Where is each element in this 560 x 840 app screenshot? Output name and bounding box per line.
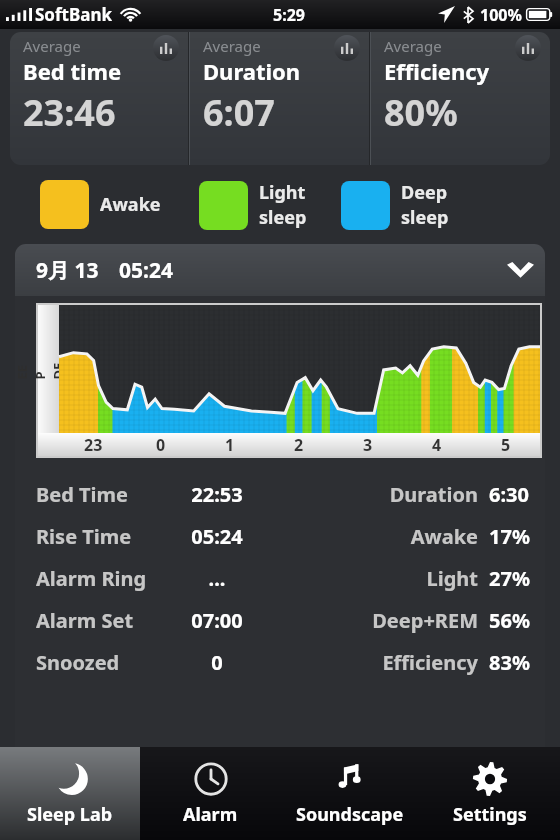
staticText: Rise Time [36,523,168,550]
staticText: Alarm Set [36,607,168,634]
staticText: 5 [501,434,511,456]
staticText: 0 [168,649,266,676]
staticText: 6:07 [203,88,275,137]
staticText: Light [266,565,478,592]
staticText: Awake [266,523,478,550]
button[interactable]: Sleep Lab [0,747,140,840]
staticText: 0 [156,434,166,456]
staticText: Average [23,36,81,56]
button[interactable]: Statistics [334,35,360,61]
staticText: Snoozed [36,649,168,676]
staticText: Deep [401,180,448,205]
staticText: 17% [489,523,541,550]
staticText: 80% [384,88,458,137]
staticText: 2 [294,434,304,456]
staticText: Alarm Ring [36,565,168,592]
staticText: Efficiency [384,56,490,86]
button[interactable]: Statistics [515,35,541,61]
staticText: Deep+REM [266,607,478,634]
staticText: sleep [259,205,307,230]
staticText: Alarm [183,802,238,827]
staticText: 27% [489,565,541,592]
button[interactable]: Average [190,32,369,165]
button[interactable]: Soundscape [280,747,420,840]
button[interactable]: Average [10,32,188,165]
button[interactable]: 9月 13 [15,244,545,296]
staticText: Sleep Lab [27,802,113,827]
button[interactable]: Bed Time [15,473,545,515]
button[interactable]: Average [371,32,550,165]
staticText: Light [259,180,306,205]
staticText: 23:46 [23,88,116,137]
staticText: 3 [363,434,373,456]
button[interactable]: Expand [503,253,537,287]
staticText: Awake [100,192,161,217]
staticText: 9月 13 [36,256,99,285]
button[interactable]: Awake [40,180,161,229]
staticText: 05:24 [168,523,266,550]
staticText: 1 [225,434,235,456]
staticText: 6:30 [489,481,541,508]
button[interactable]: Alarm [140,747,280,840]
staticText: 4 [432,434,442,456]
button[interactable]: Snoozed [15,641,545,683]
staticText: 5:29 [273,4,305,26]
staticText: 83% [489,649,541,676]
button[interactable]: Alarm Set [15,599,545,641]
button[interactable]: Deep [341,180,449,230]
staticText: Duration [266,481,478,508]
button[interactable]: Settings [420,747,560,840]
button[interactable]: Alarm Ring [15,557,545,599]
staticText: Settings [453,802,527,827]
staticText: 23 [84,434,103,456]
staticText: ... [168,565,266,592]
staticText: 05:24 [119,256,173,285]
staticText: SLEEP DEPTH [15,358,102,379]
staticText: Efficiency [266,649,478,676]
staticText: Bed time [23,56,122,86]
staticText: 22:53 [168,481,266,508]
staticText: 56% [489,607,541,634]
staticText: Average [203,36,261,56]
staticText: Bed Time [36,481,168,508]
staticText: Average [384,36,442,56]
staticText: 07:00 [168,607,266,634]
staticText: SoftBank [35,3,113,26]
button[interactable]: Light [199,180,307,230]
button[interactable]: Rise Time [15,515,545,557]
staticText: sleep [401,205,449,230]
staticText: Duration [203,56,301,86]
staticText: Soundscape [296,802,404,827]
staticText: 100% [480,4,522,26]
button[interactable]: Statistics [153,35,179,61]
